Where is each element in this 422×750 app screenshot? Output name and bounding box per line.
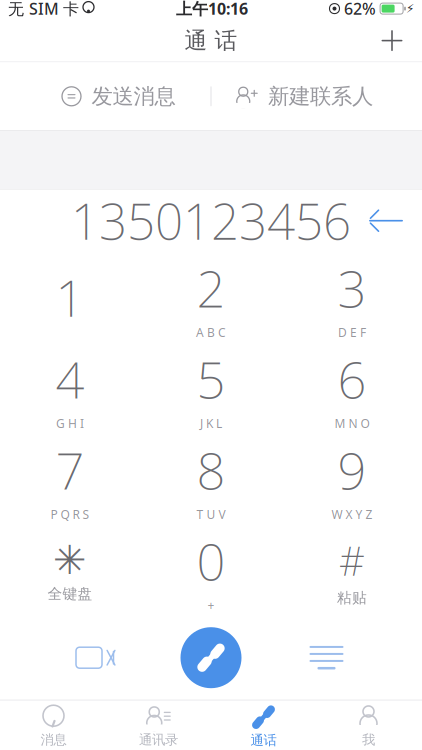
staticText: G H I xyxy=(56,415,84,431)
staticText: 6 xyxy=(337,345,366,412)
button[interactable]: 通讯录 xyxy=(106,700,211,750)
staticText: 0 xyxy=(196,527,225,594)
staticText: 8 xyxy=(196,436,225,503)
button[interactable]: 新建 xyxy=(370,20,414,62)
staticText: 9 xyxy=(337,436,366,503)
button[interactable]: # xyxy=(286,525,418,616)
staticText: 5 xyxy=(196,345,225,412)
staticText: 7 xyxy=(55,436,84,503)
staticText: # xyxy=(339,534,365,587)
button[interactable]: 5 xyxy=(145,343,277,434)
staticText: J K L xyxy=(200,415,222,431)
staticText: 粘贴 xyxy=(337,589,367,607)
staticText: 消息 xyxy=(40,732,66,748)
button[interactable]: 2 xyxy=(145,252,277,343)
staticText: 全键盘 xyxy=(47,585,92,603)
staticText: M N O xyxy=(334,415,369,431)
button[interactable]: 1 xyxy=(4,252,136,343)
button[interactable]: 发送消息 xyxy=(25,62,210,130)
staticText: 1 xyxy=(55,264,84,331)
staticText: + xyxy=(207,597,214,613)
staticText: ⚡︎ xyxy=(406,2,414,15)
button[interactable]: 3 xyxy=(286,252,418,343)
button[interactable]: 视频通话 xyxy=(30,616,161,700)
staticText: 通讯录 xyxy=(139,732,178,748)
staticText: 新建联系人 xyxy=(268,83,373,109)
button[interactable]: 呼叫 xyxy=(161,616,261,700)
button[interactable]: 通话 xyxy=(211,700,316,750)
staticText: ✳ xyxy=(53,537,87,583)
staticText: A B C xyxy=(196,324,226,340)
button[interactable]: 新建联系人 xyxy=(211,62,396,130)
staticText: P Q R S xyxy=(50,506,89,522)
staticText: 发送消息 xyxy=(91,83,175,109)
button[interactable]: 4 xyxy=(4,343,136,434)
staticText: 1350123456 xyxy=(71,188,351,253)
button[interactable]: 9 xyxy=(286,434,418,525)
staticText: W X Y Z xyxy=(331,506,372,522)
button[interactable]: 通话记录 xyxy=(261,616,392,700)
staticText: 4 xyxy=(55,345,84,412)
staticText: D E F xyxy=(338,324,366,340)
staticText: 3 xyxy=(337,254,366,321)
button[interactable]: 6 xyxy=(286,343,418,434)
staticText: 通 话 xyxy=(184,27,237,54)
button[interactable]: 8 xyxy=(145,434,277,525)
button[interactable]: 7 xyxy=(4,434,136,525)
button[interactable]: 消息 xyxy=(1,700,106,750)
button[interactable]: 0 xyxy=(145,525,277,616)
button[interactable]: ✳ xyxy=(4,525,136,616)
staticText: 通话 xyxy=(250,732,276,749)
button[interactable]: 我 xyxy=(316,700,421,750)
staticText: 上午10:16 xyxy=(176,0,248,19)
staticText: 2 xyxy=(196,254,225,321)
button[interactable]: 删除 xyxy=(358,195,414,247)
staticText: 我 xyxy=(362,732,375,748)
staticText: 无 SIM 卡 xyxy=(8,0,79,19)
staticText: T U V xyxy=(196,506,225,522)
staticText: 62% xyxy=(340,0,380,19)
